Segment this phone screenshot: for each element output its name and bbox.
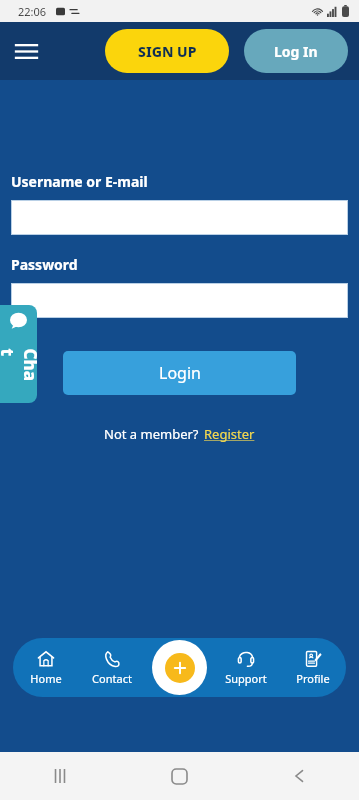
button[interactable]: Support [212, 638, 279, 697]
button[interactable]: Menu [8, 33, 44, 69]
button[interactable]: Log In [244, 29, 348, 73]
staticText: Contact [92, 671, 132, 686]
staticText: Register [204, 425, 255, 443]
button[interactable] [12, 284, 347, 317]
staticText: Not a member? [104, 425, 199, 443]
button[interactable]: Login [63, 351, 296, 395]
staticText: Login [159, 362, 201, 384]
staticText: Log In [274, 42, 318, 61]
staticText: Profile [296, 671, 330, 686]
button[interactable]: Profile [279, 638, 346, 697]
staticText: SIGN UP [138, 42, 197, 61]
staticText: 22:06 [18, 4, 47, 19]
button[interactable]: Contact [79, 638, 145, 697]
button[interactable]: Home [13, 638, 79, 697]
staticText: Username or E-mail [11, 172, 148, 191]
staticText: Chat [0, 348, 37, 385]
button[interactable]: Chat [0, 305, 37, 403]
button[interactable]: Add [152, 640, 207, 695]
button[interactable]: SIGN UP [105, 29, 229, 73]
staticText: Password [11, 255, 78, 274]
button[interactable]: Register [204, 425, 255, 443]
staticText: Support [225, 671, 267, 686]
staticText: Home [30, 671, 62, 686]
